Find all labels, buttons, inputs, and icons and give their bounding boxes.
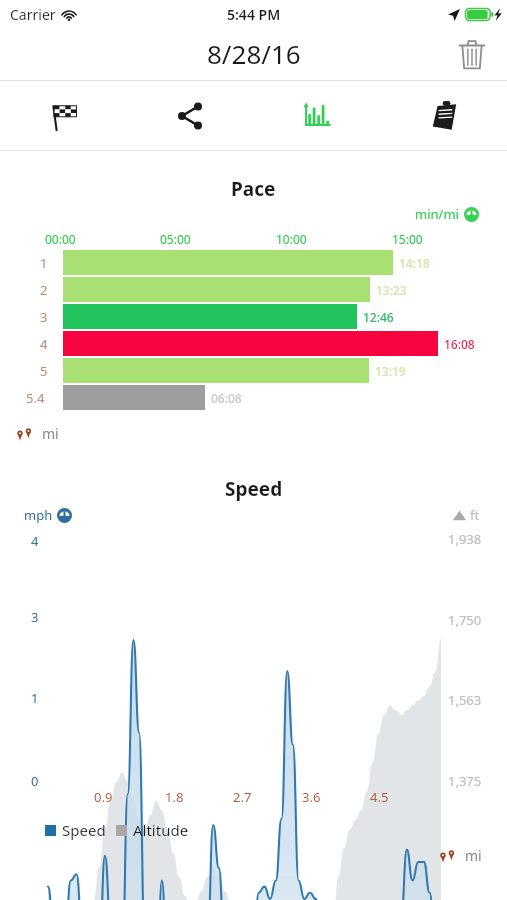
staticText: 15:00 <box>392 231 423 247</box>
staticText: 3 <box>40 308 48 326</box>
button[interactable]: Notes <box>380 81 507 150</box>
staticText: 0.9 <box>94 788 113 806</box>
staticText: 1 <box>31 689 39 707</box>
staticText: 3.6 <box>302 788 321 806</box>
staticText: mph <box>24 506 53 524</box>
staticText: 5.4 <box>26 389 45 407</box>
button[interactable]: Charts <box>253 81 380 150</box>
staticText: Carrier <box>10 5 56 24</box>
staticText: Speed <box>225 476 283 502</box>
staticText: 3 <box>31 608 39 626</box>
staticText: 14:18 <box>399 255 430 271</box>
staticText: 1 <box>40 254 48 272</box>
staticText: 2 <box>40 281 48 299</box>
staticText: 5:44 PM <box>227 5 281 24</box>
staticText: 05:00 <box>160 231 191 247</box>
staticText: 4 <box>40 335 48 353</box>
staticText: Speed <box>62 820 106 840</box>
staticText: 16:08 <box>444 336 475 352</box>
staticText: 2.7 <box>233 788 252 806</box>
staticText: 0 <box>31 772 39 790</box>
staticText: min/mi <box>415 205 459 223</box>
staticText: ft <box>470 506 480 524</box>
staticText: 5 <box>40 362 48 380</box>
staticText: 10:00 <box>276 231 307 247</box>
staticText: mi <box>465 846 482 865</box>
staticText: 8/28/16 <box>207 36 301 71</box>
staticText: 00:00 <box>45 231 76 247</box>
staticText: 12:46 <box>363 309 394 325</box>
button[interactable]: Share <box>126 81 253 150</box>
staticText: Altitude <box>133 820 189 840</box>
staticText: 1,375 <box>448 772 482 790</box>
staticText: 4.5 <box>370 788 389 806</box>
staticText: 13:19 <box>375 363 406 379</box>
staticText: 1,938 <box>448 530 482 548</box>
staticText: 1.8 <box>165 788 184 806</box>
staticText: Pace <box>231 176 276 202</box>
button[interactable]: Delete <box>448 30 496 78</box>
staticText: 1,750 <box>448 611 482 629</box>
staticText: 1,563 <box>448 691 482 709</box>
staticText: 13:23 <box>376 282 407 298</box>
button[interactable]: Route <box>0 81 126 150</box>
staticText: 4 <box>31 532 39 550</box>
staticText: 06:08 <box>211 390 242 406</box>
staticText: mi <box>42 424 59 443</box>
